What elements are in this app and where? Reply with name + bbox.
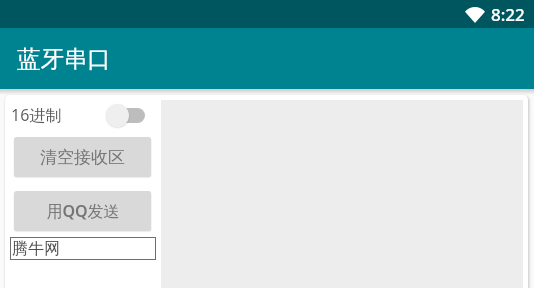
staticText: 清空接收区 [40, 147, 125, 168]
staticText: 蓝牙串口 [17, 44, 111, 74]
staticText: 16进制 [11, 104, 62, 126]
button[interactable]: 腾牛网 [10, 237, 156, 260]
staticText: 用QQ发送 [46, 200, 120, 222]
other: Wi-Fi signal [465, 7, 485, 23]
button[interactable]: 用QQ发送 [14, 191, 151, 231]
button[interactable]: 16进制 开关, 关 [106, 102, 145, 128]
staticText: 8:22 [491, 3, 525, 26]
button[interactable]: 清空接收区 [14, 137, 151, 177]
staticText: 腾牛网 [12, 239, 60, 259]
